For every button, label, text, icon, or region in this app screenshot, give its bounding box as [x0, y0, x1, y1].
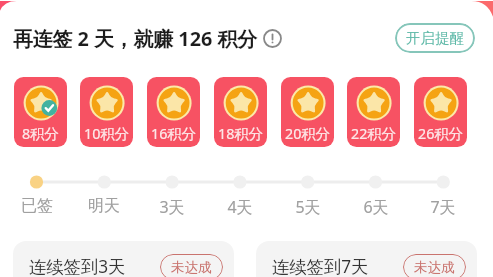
- staticText: 3天: [142, 196, 202, 218]
- button[interactable]: 18积分: [214, 77, 267, 147]
- staticText: 明天: [74, 196, 134, 216]
- staticText: 未达成: [414, 259, 455, 276]
- button[interactable]: 连续签到7天: [256, 241, 477, 277]
- staticText: 10积分: [80, 124, 133, 144]
- button[interactable]: 10积分: [80, 77, 133, 147]
- staticText: 7天: [413, 196, 473, 218]
- button[interactable]: 26积分: [414, 77, 467, 147]
- button[interactable]: 未达成: [160, 254, 223, 277]
- button[interactable]: 8积分: [14, 77, 67, 147]
- staticText: 已签: [7, 196, 67, 216]
- staticText: 8积分: [14, 124, 67, 144]
- staticText: 26积分: [414, 124, 467, 144]
- staticText: 22积分: [347, 124, 400, 144]
- staticText: 开启提醒: [406, 29, 464, 47]
- button[interactable]: 未达成: [403, 254, 466, 277]
- button[interactable]: 连续签到3天: [13, 241, 234, 277]
- staticText: 再连签 2 天，就赚 126 积分: [13, 25, 258, 52]
- button[interactable]: 开启提醒: [395, 23, 475, 53]
- staticText: 4天: [210, 196, 270, 218]
- staticText: 18积分: [214, 124, 267, 144]
- staticText: 6天: [346, 196, 406, 218]
- staticText: 未达成: [171, 259, 212, 276]
- button[interactable]: Info: [262, 28, 282, 48]
- staticText: 连续签到7天: [272, 255, 369, 277]
- button[interactable]: 22积分: [347, 77, 400, 147]
- staticText: 5天: [278, 196, 338, 218]
- staticText: 20积分: [281, 124, 334, 144]
- button[interactable]: 16积分: [147, 77, 200, 147]
- button[interactable]: 20积分: [281, 77, 334, 147]
- staticText: 16积分: [147, 124, 200, 144]
- staticText: 连续签到3天: [29, 255, 126, 277]
